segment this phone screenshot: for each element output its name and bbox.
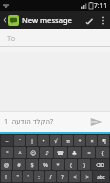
staticText: ☎ bbox=[57, 150, 64, 156]
button[interactable]: ` bbox=[14, 135, 25, 146]
button[interactable]: Navigate up bbox=[3, 15, 7, 25]
button[interactable]: × bbox=[86, 135, 97, 146]
button[interactable]: ⌫ bbox=[91, 159, 109, 170]
staticText: ♪ bbox=[45, 150, 49, 156]
staticText: > bbox=[85, 173, 89, 180]
button[interactable]: ^ bbox=[14, 147, 26, 158]
staticText: # bbox=[17, 161, 21, 168]
staticText: ♣ bbox=[72, 150, 77, 156]
staticText: ÷ bbox=[78, 137, 82, 144]
staticText: % bbox=[43, 161, 48, 168]
button[interactable]: ♣ bbox=[68, 147, 81, 158]
staticText: ! bbox=[5, 173, 7, 180]
staticText: | bbox=[30, 137, 34, 144]
button[interactable]: ÷ bbox=[74, 135, 85, 146]
button[interactable]: To bbox=[0, 29, 110, 46]
button[interactable]: = bbox=[82, 147, 95, 158]
button[interactable]: abc bbox=[93, 171, 109, 182]
button[interactable]: Attach bbox=[81, 11, 97, 29]
button[interactable]: √ bbox=[50, 135, 61, 146]
staticText: √ bbox=[54, 138, 58, 144]
button[interactable]: ☎ bbox=[54, 147, 67, 158]
staticText: ? bbox=[61, 173, 64, 180]
staticText: ' bbox=[27, 173, 29, 180]
staticText: ⌫ bbox=[96, 162, 104, 168]
button[interactable]: * bbox=[52, 159, 64, 170]
button[interactable]: { bbox=[96, 147, 109, 158]
button[interactable]: # bbox=[13, 159, 25, 170]
staticText: = bbox=[87, 149, 91, 156]
staticText: * bbox=[56, 161, 60, 168]
staticText: π bbox=[66, 137, 70, 144]
staticText: < bbox=[73, 173, 77, 180]
staticText: / bbox=[49, 173, 52, 180]
button[interactable]: " bbox=[12, 171, 22, 182]
button[interactable]: ~ bbox=[1, 135, 13, 146]
button[interactable]: ☺ bbox=[27, 147, 39, 158]
staticText: ( bbox=[70, 161, 72, 168]
staticText: 7:11 bbox=[94, 1, 107, 10]
button[interactable]: ! bbox=[1, 171, 11, 182]
staticText: ` bbox=[19, 137, 21, 144]
button[interactable]: : bbox=[34, 171, 44, 182]
button[interactable]: ° bbox=[1, 147, 13, 158]
staticText: abc bbox=[97, 174, 105, 180]
staticText: { bbox=[101, 149, 104, 156]
staticText: הקלד הודעה 1? bbox=[4, 117, 54, 127]
button[interactable]: ? bbox=[57, 171, 68, 182]
staticText: ☺ bbox=[30, 150, 36, 156]
button[interactable]: הקלד הודעה 1? bbox=[4, 117, 82, 127]
button[interactable]: π bbox=[62, 135, 73, 146]
button[interactable]: > bbox=[81, 171, 92, 182]
staticText: ° bbox=[6, 149, 9, 156]
button[interactable]: ♪ bbox=[40, 147, 53, 158]
staticText: • bbox=[42, 137, 45, 144]
button[interactable]: @ bbox=[1, 159, 12, 170]
staticText: × bbox=[90, 137, 94, 144]
button[interactable]: More options bbox=[97, 11, 109, 29]
button[interactable]: $ bbox=[26, 159, 38, 170]
staticText: ~ bbox=[5, 137, 9, 144]
button[interactable]: % bbox=[39, 159, 51, 170]
button[interactable]: / bbox=[45, 171, 56, 182]
staticText: To bbox=[7, 33, 16, 43]
staticText: @ bbox=[4, 161, 9, 168]
button[interactable]: ¶ bbox=[98, 135, 109, 146]
button[interactable]: • bbox=[38, 135, 49, 146]
button[interactable]: ( bbox=[65, 159, 77, 170]
button[interactable]: < bbox=[69, 171, 80, 182]
staticText: ¶ bbox=[102, 137, 106, 144]
staticText: ^ bbox=[18, 149, 22, 156]
staticText: $ bbox=[30, 161, 34, 168]
button[interactable]: ' bbox=[23, 171, 33, 182]
staticText: : bbox=[38, 173, 40, 180]
staticText: " bbox=[16, 173, 19, 180]
staticText: New message bbox=[22, 15, 72, 25]
button[interactable]: Send bbox=[86, 112, 106, 132]
button[interactable]: ) bbox=[78, 159, 90, 170]
staticText: ) bbox=[83, 161, 85, 168]
button[interactable]: | bbox=[26, 135, 37, 146]
